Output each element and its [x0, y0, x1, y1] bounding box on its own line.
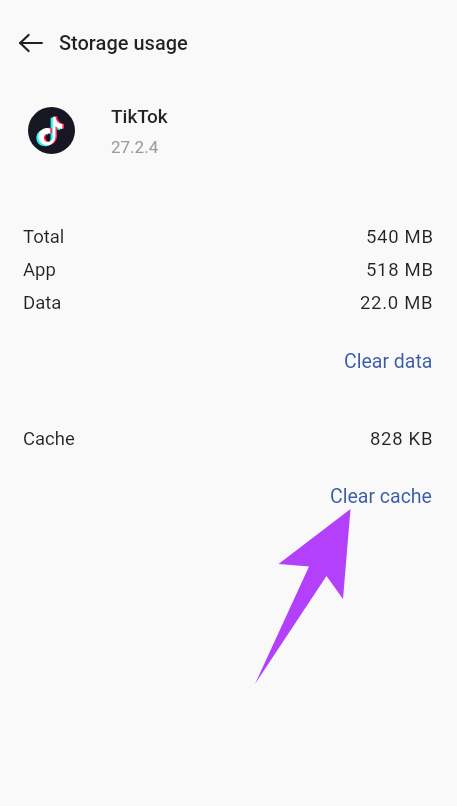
staticText: 22.0 MB — [360, 292, 434, 314]
staticText: 27.2.4 — [111, 137, 159, 157]
staticText: Clear data — [344, 350, 433, 373]
staticText: 540 MB — [366, 226, 434, 248]
button[interactable]: Clear data — [332, 342, 445, 381]
staticText: Data — [23, 292, 62, 314]
staticText: 518 MB — [366, 259, 434, 281]
staticText: Storage usage — [59, 31, 188, 54]
staticText: Cache — [23, 428, 75, 450]
staticText: Clear cache — [330, 485, 432, 508]
button[interactable]: Clear cache — [318, 477, 444, 516]
staticText: 828 KB — [370, 428, 434, 450]
staticText: Total — [23, 226, 65, 248]
staticText: TikTok — [111, 105, 168, 127]
button[interactable]: Back — [13, 25, 49, 61]
staticText: App — [23, 259, 56, 281]
